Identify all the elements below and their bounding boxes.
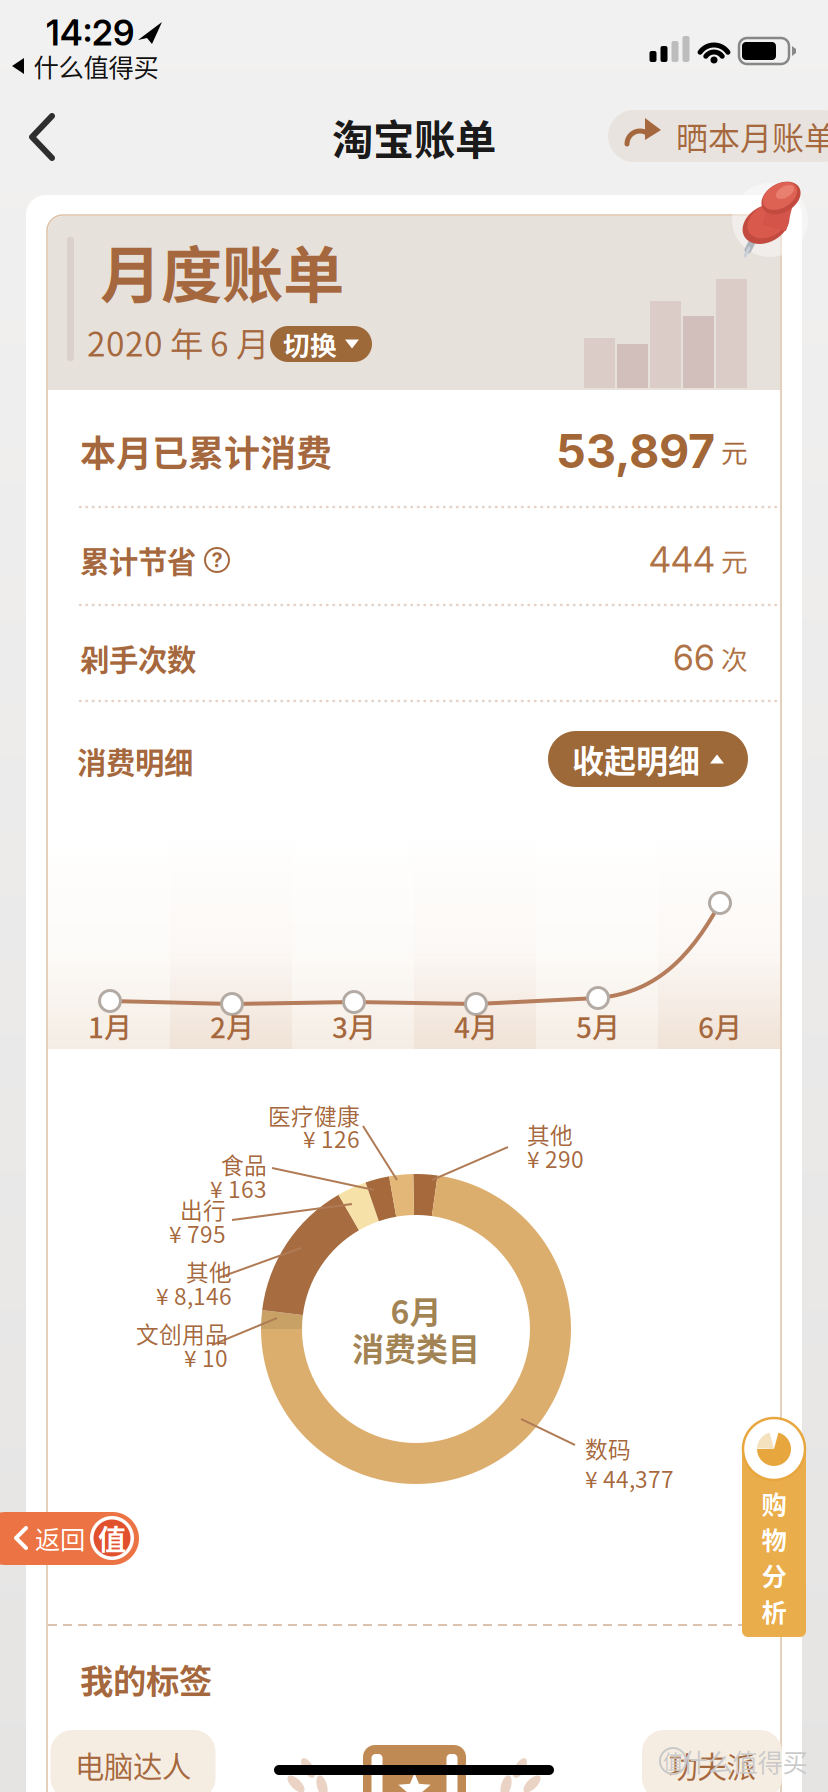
- staticText: 其他: [186, 1255, 232, 1287]
- staticText: 切换: [283, 325, 337, 363]
- staticText: 晒本月账单: [676, 113, 828, 159]
- staticText: 医疗健康: [268, 1099, 360, 1131]
- staticText: ¥ 126: [303, 1122, 360, 1154]
- staticText: 1月: [88, 1006, 132, 1046]
- staticText: 电脑达人: [75, 1744, 191, 1786]
- staticText: ¥ 10: [184, 1341, 228, 1373]
- staticText: 2月: [210, 1006, 254, 1046]
- staticText: 5月: [576, 1006, 620, 1046]
- staticText: 444: [649, 539, 715, 581]
- button[interactable]: 电脑达人: [50, 1730, 215, 1792]
- staticText: 剁手次数: [80, 637, 196, 679]
- button[interactable]: 切换: [270, 326, 372, 362]
- button[interactable]: 晒本月账单: [608, 110, 828, 162]
- staticText: 收起明细: [572, 736, 700, 782]
- staticText: 出行: [180, 1193, 226, 1225]
- staticText: ¥ 163: [210, 1172, 267, 1204]
- staticText: 其他: [527, 1118, 573, 1150]
- button[interactable]: 购物分析: [0, 0, 828, 1792]
- staticText: 购: [761, 1485, 786, 1521]
- staticText: 分: [761, 1557, 786, 1593]
- staticText: 元: [715, 432, 748, 470]
- staticText: 消费明细: [77, 740, 193, 782]
- button[interactable]: 收起明细: [548, 731, 748, 787]
- staticText: 返回: [35, 1520, 85, 1556]
- staticText: 2020 年 6 月: [87, 318, 269, 366]
- staticText: 66: [673, 637, 715, 679]
- staticText: 次: [715, 639, 748, 677]
- button[interactable]: 功夫派: [642, 1730, 782, 1792]
- staticText: 数码: [585, 1432, 631, 1464]
- staticText: 消费类目: [352, 1324, 480, 1370]
- button[interactable]: Back: [22, 110, 66, 164]
- staticText: 析: [761, 1593, 786, 1629]
- staticText: 功夫派: [668, 1744, 755, 1786]
- staticText: 我的标签: [80, 1655, 212, 1703]
- staticText: ?: [211, 548, 222, 572]
- staticText: 4月: [454, 1006, 498, 1046]
- staticText: 6月: [390, 1287, 441, 1333]
- staticText: 6月: [698, 1006, 742, 1046]
- staticText: ¥ 8,146: [156, 1279, 232, 1311]
- staticText: 累计节省: [80, 539, 196, 581]
- staticText: ¥ 795: [169, 1217, 226, 1249]
- staticText: 3月: [332, 1006, 376, 1046]
- staticText: ¥ 44,377: [585, 1462, 674, 1494]
- staticText: 月度账单: [100, 227, 344, 315]
- staticText: 食品: [221, 1148, 267, 1180]
- staticText: 文创用品: [136, 1317, 228, 1349]
- staticText: 53,897: [556, 423, 715, 479]
- staticText: 什么值得买: [33, 48, 158, 84]
- staticText: 物: [761, 1521, 786, 1557]
- staticText: 14:29: [46, 12, 134, 54]
- staticText: 值: [98, 1518, 126, 1558]
- staticText: 什么值得买: [682, 1743, 807, 1779]
- staticText: ¥ 290: [527, 1142, 584, 1174]
- staticText: 值: [663, 1746, 683, 1775]
- button[interactable]: 返回什么值得买: [0, 0, 828, 1792]
- staticText: 本月已累计消费: [80, 425, 332, 477]
- staticText: 元: [715, 541, 748, 579]
- staticText: 淘宝账单: [332, 107, 496, 167]
